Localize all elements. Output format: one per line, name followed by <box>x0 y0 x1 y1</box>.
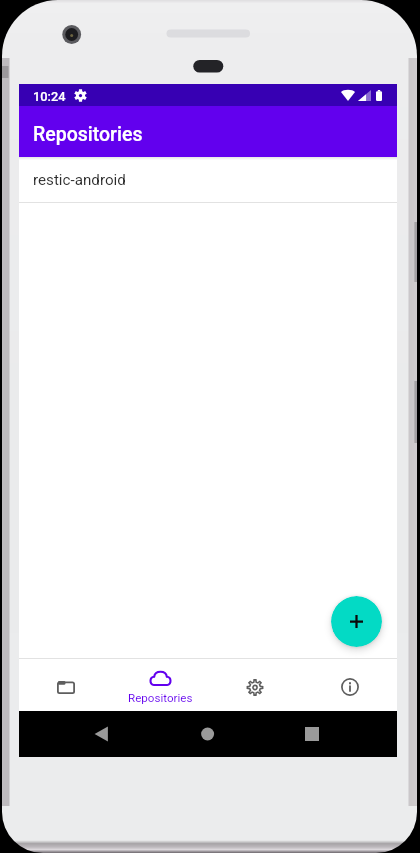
button[interactable]: Files <box>19 659 113 711</box>
button[interactable]: About <box>302 659 397 711</box>
staticText: restic-android <box>33 171 126 189</box>
button[interactable]: Add repository <box>331 596 382 647</box>
button[interactable]: restic-android <box>19 157 397 203</box>
button[interactable]: Repositories <box>113 659 207 711</box>
staticText: 10:24 <box>33 89 66 104</box>
staticText: Repositories <box>33 123 143 146</box>
button[interactable]: Settings <box>207 659 302 711</box>
staticText: Repositories <box>128 691 193 705</box>
